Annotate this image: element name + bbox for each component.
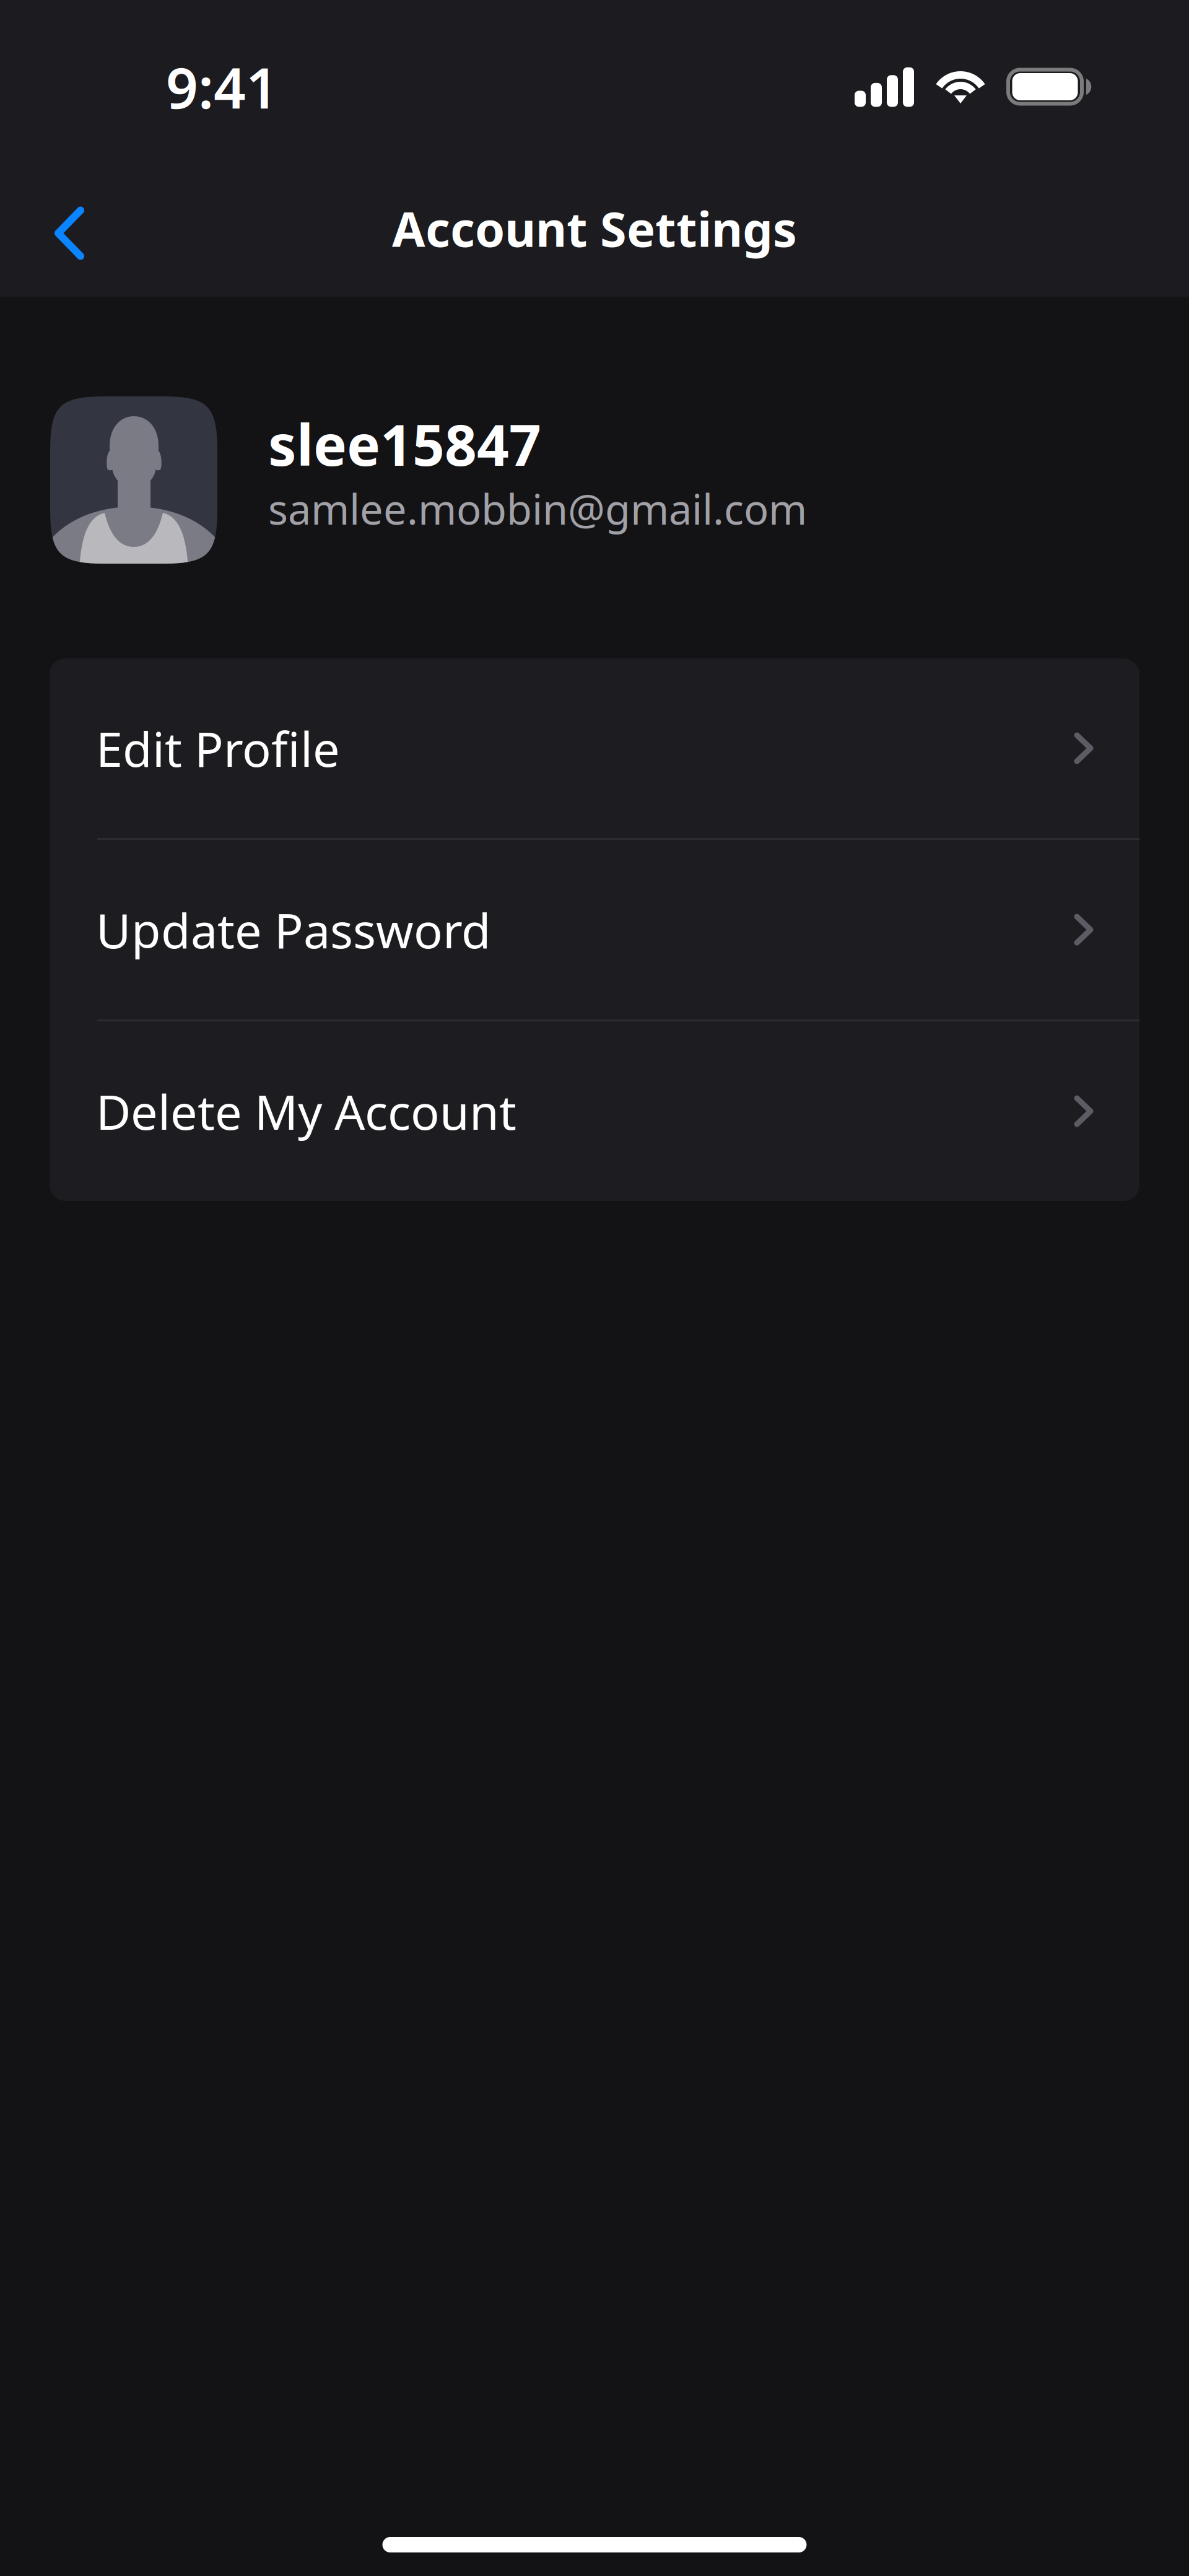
staticText: Edit Profile bbox=[96, 716, 340, 780]
staticText: samlee.mobbin@gmail.com bbox=[268, 481, 807, 536]
button[interactable]: Edit Profile bbox=[50, 658, 1139, 838]
button[interactable]: Delete My Account bbox=[50, 1021, 1139, 1201]
staticText: Account Settings bbox=[392, 196, 797, 260]
staticText: Update Password bbox=[96, 898, 491, 962]
button[interactable]: Back bbox=[0, 179, 99, 278]
staticText: Delete My Account bbox=[96, 1079, 516, 1143]
staticText: 9:41 bbox=[166, 49, 278, 124]
staticText: slee15847 bbox=[268, 407, 541, 481]
button[interactable]: Update Password bbox=[50, 840, 1139, 1019]
